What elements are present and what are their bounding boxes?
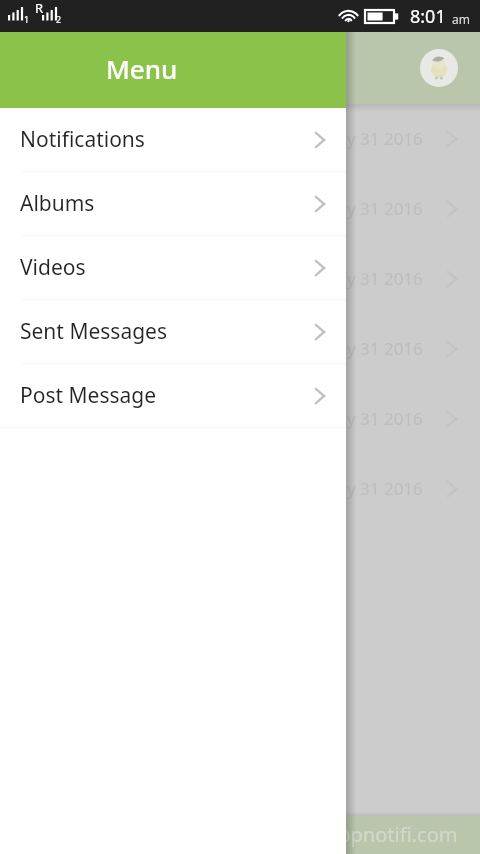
button[interactable]: Videos <box>0 236 346 299</box>
staticText: 1 <box>24 13 30 25</box>
button[interactable]: Albums <box>0 172 346 235</box>
staticText: Notifications <box>20 125 145 154</box>
staticText: R <box>35 0 44 17</box>
staticText: Menu <box>106 51 178 86</box>
staticText: am <box>452 11 470 27</box>
staticText: Post Message <box>20 381 157 410</box>
staticText: May 31 2016 <box>322 337 423 360</box>
button[interactable]: Notifications <box>0 108 346 171</box>
button[interactable]: Post Message <box>0 364 346 427</box>
button[interactable]: Sent Messages <box>0 300 346 363</box>
staticText: 2 <box>56 13 62 25</box>
staticText: May 31 2016 <box>322 477 423 500</box>
button[interactable]: May 31 2016 <box>0 454 480 523</box>
staticText: 8:01 <box>410 4 446 29</box>
button[interactable]: May 31 2016 <box>0 244 480 313</box>
staticText: appnotifi.com <box>327 821 458 848</box>
staticText: Sent Messages <box>20 317 167 346</box>
button[interactable]: May 31 2016 <box>0 314 480 383</box>
button[interactable]: May 31 2016 <box>0 174 480 243</box>
staticText: Albums <box>20 189 95 218</box>
button[interactable]: Profile <box>420 49 458 87</box>
button[interactable]: May 31 2016 <box>0 104 480 173</box>
staticText: May 31 2016 <box>322 127 423 150</box>
staticText: Videos <box>20 253 86 282</box>
staticText: May 31 2016 <box>322 407 423 430</box>
button[interactable]: May 31 2016 <box>0 384 480 453</box>
staticText: May 31 2016 <box>322 197 423 220</box>
staticText: May 31 2016 <box>322 267 423 290</box>
